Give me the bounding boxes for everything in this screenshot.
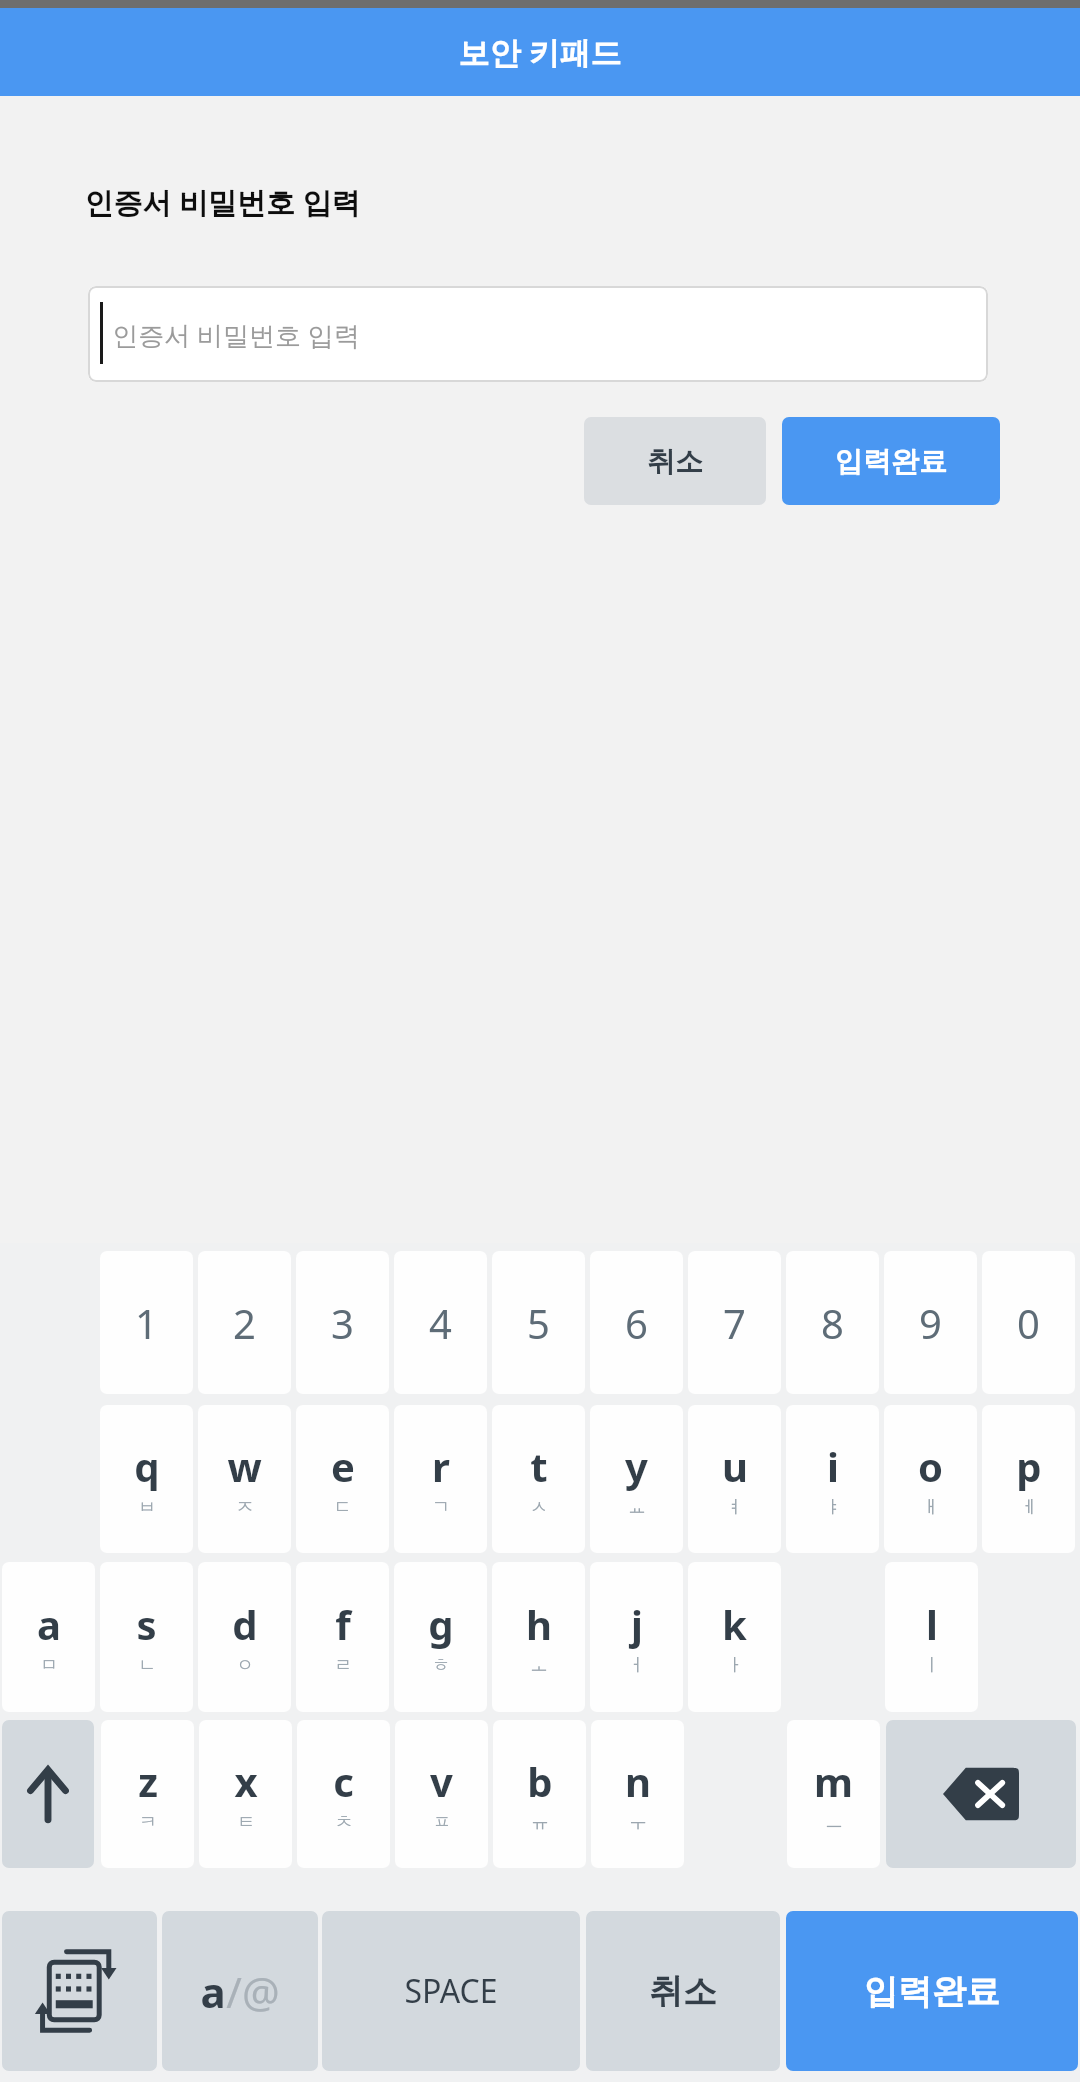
staticText: 입력완료 <box>835 444 947 479</box>
button[interactable]: b <box>493 1720 586 1868</box>
button[interactable]: c <box>297 1720 390 1868</box>
button[interactable]: 인증서 비밀번호 입력 <box>88 286 988 382</box>
button[interactable]: d <box>198 1562 291 1712</box>
staticText: ㄴ <box>138 1654 156 1677</box>
button[interactable]: v <box>395 1720 488 1868</box>
staticText: ㅁ <box>40 1654 58 1677</box>
button[interactable]: y <box>590 1405 683 1553</box>
staticText: ㅠ <box>531 1811 549 1834</box>
button[interactable]: 보안 키패드 <box>0 8 1080 96</box>
button[interactable]: 5 <box>492 1251 585 1394</box>
staticText: q <box>134 1439 160 1493</box>
staticText: ㅂ <box>138 1496 156 1519</box>
button[interactable]: m <box>787 1720 880 1868</box>
staticText: ㅐ <box>922 1496 940 1519</box>
staticText: y <box>625 1439 648 1493</box>
staticText: 취소 <box>649 1970 717 2013</box>
button[interactable]: u <box>688 1405 781 1553</box>
staticText: s <box>136 1597 157 1651</box>
staticText: c <box>333 1754 354 1808</box>
staticText: j <box>631 1597 643 1651</box>
staticText: b <box>527 1754 553 1808</box>
staticText: 취소 <box>647 444 703 479</box>
staticText: w <box>227 1439 262 1493</box>
button[interactable]: a <box>2 1562 95 1712</box>
button[interactable]: 취소 <box>584 417 766 505</box>
button[interactable]: SPACE <box>322 1911 580 2071</box>
staticText: ㅓ <box>628 1654 646 1677</box>
staticText: 입력완료 <box>864 1970 1000 2013</box>
button[interactable]: l <box>885 1562 978 1712</box>
staticText: ㅎ <box>432 1654 450 1677</box>
button[interactable]: 0 <box>982 1251 1075 1394</box>
button[interactable]: j <box>590 1562 683 1712</box>
staticText: ㅋ <box>139 1811 157 1834</box>
button[interactable]: q <box>100 1405 193 1553</box>
staticText: ㅑ <box>824 1496 842 1519</box>
button[interactable]: 4 <box>394 1251 487 1394</box>
staticText: ㅇ <box>236 1654 254 1677</box>
staticText: @ <box>242 1963 280 2020</box>
staticText: i <box>827 1439 839 1493</box>
button[interactable]: g <box>394 1562 487 1712</box>
button[interactable]: 2 <box>198 1251 291 1394</box>
staticText: ㅈ <box>236 1496 254 1519</box>
staticText: g <box>428 1597 454 1651</box>
staticText: / <box>226 1963 242 2020</box>
staticText: SPACE <box>404 1969 498 2013</box>
button[interactable]: h <box>492 1562 585 1712</box>
staticText: ㅌ <box>237 1811 255 1834</box>
button[interactable]: 3 <box>296 1251 389 1394</box>
button[interactable]: n <box>591 1720 684 1868</box>
button[interactable]: f <box>296 1562 389 1712</box>
staticText: z <box>138 1754 158 1808</box>
button[interactable]: k <box>688 1562 781 1712</box>
button[interactable]: o <box>884 1405 977 1553</box>
button[interactable]: Shift <box>2 1720 94 1868</box>
staticText: p <box>1016 1439 1042 1493</box>
button[interactable]: 7 <box>688 1251 781 1394</box>
staticText: 2 <box>233 1296 256 1350</box>
button[interactable]: 입력완료 <box>782 417 1000 505</box>
staticText: 3 <box>331 1296 354 1350</box>
staticText: ㅏ <box>726 1654 744 1677</box>
button[interactable]: w <box>198 1405 291 1553</box>
staticText: x <box>234 1754 258 1808</box>
staticText: 4 <box>429 1296 452 1350</box>
staticText: 인증서 비밀번호 입력 <box>112 317 360 353</box>
staticText: 보안 키패드 <box>458 31 622 73</box>
button[interactable]: x <box>199 1720 292 1868</box>
button[interactable]: t <box>492 1405 585 1553</box>
button[interactable]: 입력완료 <box>786 1911 1078 2071</box>
button[interactable]: Change keypad <box>2 1911 157 2071</box>
button[interactable]: a <box>162 1911 318 2071</box>
staticText: o <box>918 1439 943 1493</box>
button[interactable]: 1 <box>100 1251 193 1394</box>
button[interactable]: 취소 <box>586 1911 780 2071</box>
staticText: ㄹ <box>334 1654 352 1677</box>
button[interactable]: Backspace <box>886 1720 1076 1868</box>
staticText: 1 <box>135 1296 158 1350</box>
staticText: ㅣ <box>923 1654 941 1677</box>
staticText: 6 <box>625 1296 648 1350</box>
button[interactable]: p <box>982 1405 1075 1553</box>
staticText: ㄷ <box>334 1496 352 1519</box>
button[interactable]: e <box>296 1405 389 1553</box>
staticText: f <box>335 1597 351 1651</box>
button[interactable]: 8 <box>786 1251 879 1394</box>
staticText: n <box>625 1754 651 1808</box>
staticText: ㅍ <box>433 1811 451 1834</box>
button[interactable]: r <box>394 1405 487 1553</box>
button[interactable]: z <box>101 1720 194 1868</box>
staticText: ㅅ <box>530 1496 548 1519</box>
staticText: ㅜ <box>629 1811 647 1834</box>
button[interactable]: s <box>100 1562 193 1712</box>
staticText: t <box>530 1439 548 1493</box>
staticText: m <box>814 1754 853 1808</box>
staticText: d <box>232 1597 258 1651</box>
button[interactable]: i <box>786 1405 879 1553</box>
staticText: a <box>37 1597 61 1651</box>
button[interactable]: 9 <box>884 1251 977 1394</box>
button[interactable]: 6 <box>590 1251 683 1394</box>
staticText: ㄱ <box>432 1496 450 1519</box>
